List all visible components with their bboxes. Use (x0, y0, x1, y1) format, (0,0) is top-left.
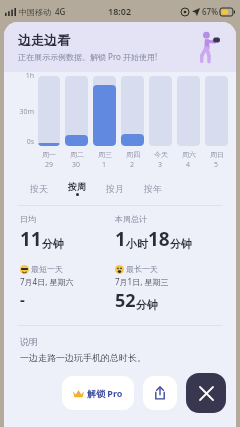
staticText: 52 (115, 288, 136, 313)
staticText: 分钟 (136, 298, 158, 312)
staticText: 30 (72, 160, 81, 170)
button[interactable]: Share (143, 376, 177, 410)
staticText: 按年 (144, 183, 162, 194)
button[interactable] (93, 76, 116, 146)
staticText: 周六 (182, 150, 196, 159)
staticText: 边走边看 (18, 32, 70, 48)
staticText: 按天 (30, 183, 48, 194)
staticText: 5 (214, 160, 219, 170)
staticText: 中国移动 (19, 7, 51, 17)
staticText: 本周总计 (115, 214, 147, 224)
button[interactable]: Close (186, 373, 226, 413)
staticText: 67% (202, 6, 218, 17)
staticText: 18:02 (108, 5, 132, 17)
staticText: - (20, 289, 25, 309)
staticText: 周日 (210, 150, 224, 159)
staticText: 0s (26, 137, 34, 147)
staticText: 7月4日, 星期六 (20, 276, 74, 287)
button[interactable]: 解锁 Pro (62, 376, 134, 410)
button[interactable]: 按年 (134, 177, 172, 199)
button[interactable]: 按周 (58, 177, 96, 199)
staticText: 解锁 Pro (87, 387, 123, 399)
button[interactable] (65, 76, 88, 146)
staticText: 1 (102, 160, 107, 170)
staticText: 小时 (126, 237, 148, 251)
staticText: 日均 (20, 214, 36, 224)
staticText: 4 (186, 160, 191, 170)
staticText: 按月 (106, 183, 124, 194)
staticText: 分钟 (170, 237, 192, 251)
staticText: 1 (115, 226, 126, 252)
button[interactable] (121, 76, 144, 146)
staticText: 一边走路一边玩手机的总时长。 (20, 352, 146, 363)
staticText: 1h (25, 71, 34, 81)
staticText: 3 (158, 160, 163, 170)
staticText: 11 (20, 226, 42, 252)
staticText: 周三 (98, 150, 112, 159)
staticText: 说明 (20, 336, 38, 347)
staticText: 周四 (126, 150, 140, 159)
staticText: 正在展示示例数据。解锁 Pro 开始使用! (18, 51, 158, 62)
staticText: 29 (45, 160, 54, 170)
staticText: 分钟 (42, 237, 64, 251)
staticText: 最长一天 (126, 264, 158, 274)
staticText: 30m (19, 107, 34, 117)
staticText: 按周 (68, 181, 86, 192)
button[interactable] (38, 76, 60, 146)
staticText: 7月1日, 星期三 (115, 276, 169, 287)
staticText: 2 (130, 160, 135, 170)
button[interactable]: 按月 (96, 177, 134, 199)
button[interactable]: 按天 (20, 177, 58, 199)
staticText: 18 (148, 226, 170, 252)
staticText: 今天 (154, 150, 168, 159)
staticText: 周一 (42, 150, 56, 159)
staticText: 4G (55, 6, 66, 17)
staticText: 周二 (70, 150, 84, 159)
staticText: 最短一天 (31, 264, 63, 274)
